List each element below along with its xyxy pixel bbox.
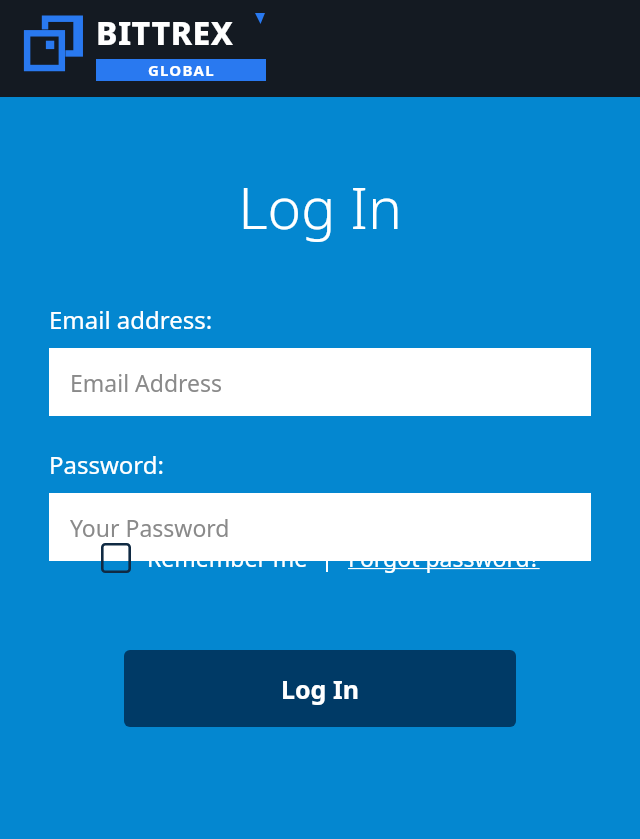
button[interactable]: Log In bbox=[124, 650, 516, 727]
staticText: Your Password bbox=[70, 512, 230, 543]
button[interactable]: Forgot password? bbox=[346, 538, 542, 577]
staticText: Log In bbox=[0, 168, 640, 246]
staticText: Password: bbox=[49, 448, 164, 481]
staticText: Email Address bbox=[70, 367, 223, 398]
staticText: BITTREX bbox=[96, 11, 234, 55]
staticText: GLOBAL bbox=[148, 60, 215, 80]
staticText: Log In bbox=[281, 672, 359, 706]
button[interactable]: Email Address bbox=[49, 348, 591, 416]
staticText: Remember me bbox=[147, 542, 308, 573]
button[interactable]: Your Password bbox=[49, 493, 591, 561]
button[interactable]: Remember me bbox=[99, 538, 310, 577]
staticText: Forgot password? bbox=[348, 542, 540, 573]
staticText: Email address: bbox=[49, 303, 213, 336]
other: Bittrex Global logo bbox=[26, 15, 82, 77]
